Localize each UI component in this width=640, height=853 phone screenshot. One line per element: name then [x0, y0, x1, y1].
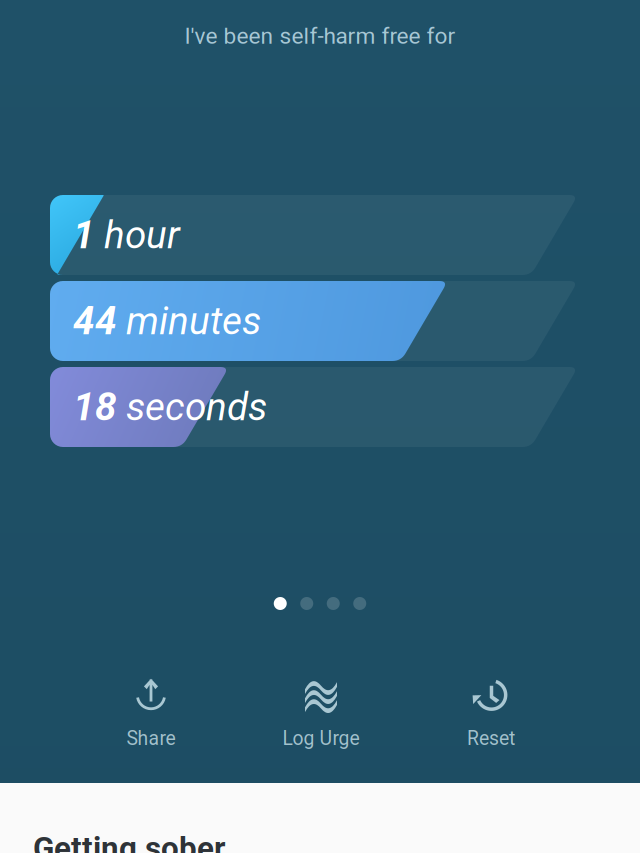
staticText: I've been self-harm free for	[184, 23, 455, 49]
staticText: Log Urge	[282, 727, 359, 750]
staticText: Reset	[467, 727, 515, 750]
staticText: 44	[73, 298, 117, 344]
staticText: 18	[73, 384, 117, 430]
staticText: minutes	[117, 298, 261, 344]
button[interactable]: Reset	[406, 668, 576, 760]
staticText: 1	[73, 212, 95, 258]
staticText: hour	[95, 212, 180, 258]
staticText: Share	[126, 727, 175, 750]
button[interactable]: Share	[66, 668, 236, 760]
staticText: seconds	[117, 384, 267, 430]
staticText: Getting sober	[33, 830, 225, 853]
button[interactable]: Log Urge	[236, 668, 406, 760]
